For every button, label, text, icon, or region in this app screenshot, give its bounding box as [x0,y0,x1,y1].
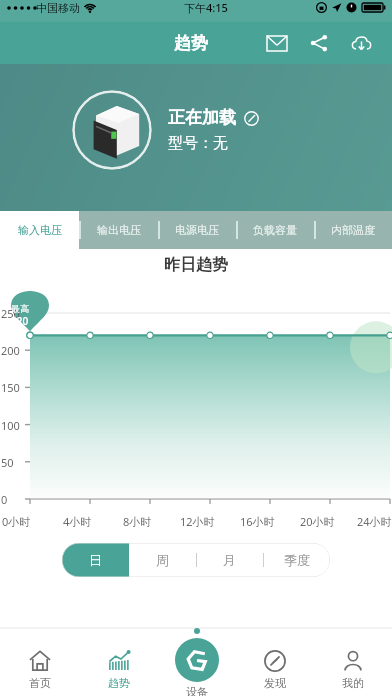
button[interactable]: Share [302,26,336,60]
staticText: 50 [1,455,14,470]
staticText: 趋势 [108,676,130,690]
button[interactable]: 发现 [236,649,314,696]
staticText: 电源电压 [175,223,219,237]
button[interactable]: 电源电压 [158,211,236,249]
staticText: 输出电压 [97,223,141,237]
staticText: 负载容量 [253,223,297,237]
other: 设备 [175,638,219,682]
staticText: 100 [1,418,20,433]
button[interactable]: 内部温度 [314,211,392,249]
staticText: 首页 [29,676,51,690]
staticText: 12小时 [180,514,215,529]
staticText: 昨日趋势 [0,255,392,275]
staticText: 220 [11,314,29,328]
button[interactable]: 负载容量 [236,211,314,249]
staticText: 我的 [342,676,364,690]
button[interactable]: 月 [196,543,263,577]
staticText: 24小时 [357,514,392,529]
staticText: 250 [1,306,20,321]
button[interactable]: 季度 [263,543,330,577]
button[interactable]: Edit [242,109,260,127]
staticText: 输入电压 [18,223,62,237]
staticText: 趋势 [174,33,208,54]
staticText: 0小时 [2,514,31,529]
staticText: 月 [223,552,236,568]
staticText: 季度 [284,552,310,568]
staticText: 下午4:15 [184,0,228,15]
button[interactable]: 首页 [0,649,79,696]
button[interactable]: Download [344,26,378,60]
button[interactable]: 输出电压 [79,211,158,249]
staticText: 4小时 [63,514,92,529]
staticText: 200 [1,343,20,358]
button[interactable]: 我的 [314,649,392,696]
staticText: 最高 [11,303,29,314]
staticText: 设备 [186,685,208,696]
button[interactable]: 输入电压 [0,211,79,249]
staticText: 16小时 [240,514,275,529]
staticText: 20小时 [300,514,335,529]
button[interactable]: 趋势 [79,649,158,696]
staticText: 型号：无 [168,134,228,153]
staticText: 150 [1,380,20,395]
staticText: 日 [89,552,102,568]
button[interactable]: 周 [129,543,196,577]
staticText: 正在加载 [168,107,236,128]
staticText: 周 [156,552,169,568]
staticText: 0 [1,492,8,507]
button[interactable]: 日 [62,543,129,577]
staticText: 发现 [264,676,286,690]
staticText: 8小时 [123,514,152,529]
button[interactable]: Mail [260,26,294,60]
button[interactable]: 设备 [158,628,236,696]
staticText: 中国移动 [36,1,80,15]
staticText: 内部温度 [331,223,375,237]
